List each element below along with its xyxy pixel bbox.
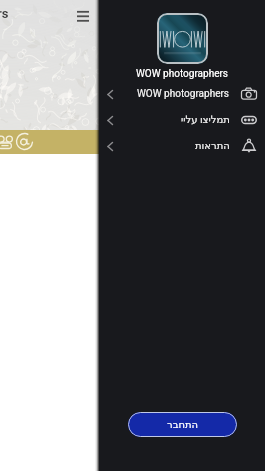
staticText: WOW photographers — [99, 68, 265, 80]
staticText: התחבר — [167, 419, 199, 431]
button[interactable]: התחבר — [128, 412, 237, 437]
button[interactable]: תמליצו עליי — [99, 107, 265, 133]
staticText: WOW photographers — [0, 6, 9, 21]
button[interactable]: התראות — [99, 133, 265, 159]
staticText: תמליצו עליי — [181, 114, 230, 126]
button[interactable]: Menu — [72, 4, 94, 26]
button[interactable]: Email — [16, 133, 33, 150]
button[interactable]: WOW photographers — [99, 81, 265, 107]
staticText: WOW photographers — [137, 88, 230, 100]
staticText: התראות — [195, 140, 230, 152]
button[interactable]: Call — [0, 133, 14, 151]
